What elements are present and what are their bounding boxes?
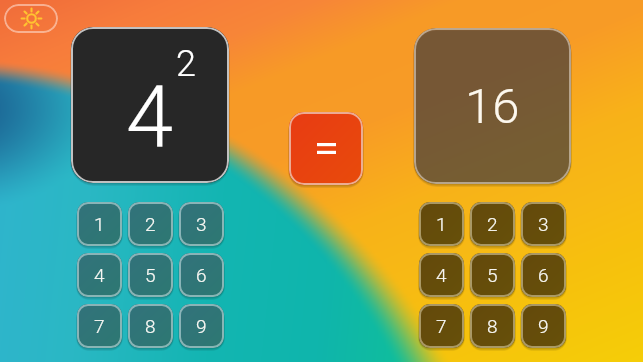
button[interactable]: 7 — [419, 304, 464, 348]
staticText: 16 — [465, 78, 520, 135]
button[interactable]: 16 — [414, 28, 571, 184]
staticText: 1 — [94, 213, 105, 235]
button[interactable]: 3 — [179, 202, 224, 246]
staticText: 9 — [538, 315, 549, 337]
button[interactable]: 9 — [179, 304, 224, 348]
button[interactable]: 4 — [419, 253, 464, 297]
staticText: 6 — [538, 264, 549, 286]
staticText: 2 — [487, 213, 498, 235]
staticText: 3 — [538, 213, 549, 235]
staticText: 9 — [196, 315, 207, 337]
button[interactable]: 7 — [77, 304, 122, 348]
staticText: 5 — [145, 264, 156, 286]
staticText: 3 — [196, 213, 207, 235]
staticText: 2 — [176, 43, 196, 85]
staticText: 5 — [487, 264, 498, 286]
staticText: 2 — [145, 213, 156, 235]
button[interactable]: Brightness — [4, 4, 58, 33]
staticText: 4 — [436, 264, 447, 286]
button[interactable]: 1 — [419, 202, 464, 246]
button[interactable]: 4 — [77, 253, 122, 297]
staticText: 6 — [196, 264, 207, 286]
button[interactable]: 1 — [77, 202, 122, 246]
button[interactable]: 5 — [470, 253, 515, 297]
staticText: 7 — [436, 315, 447, 337]
staticText: 4 — [94, 264, 105, 286]
button[interactable]: 3 — [521, 202, 566, 246]
button[interactable]: 6 — [179, 253, 224, 297]
button[interactable]: 8 — [128, 304, 173, 348]
button[interactable]: 2 — [128, 202, 173, 246]
staticText: 4 — [126, 67, 174, 167]
staticText: 8 — [145, 315, 156, 337]
button[interactable]: Equals — [289, 112, 363, 185]
button[interactable]: 6 — [521, 253, 566, 297]
button[interactable]: 8 — [470, 304, 515, 348]
button[interactable]: 2 — [470, 202, 515, 246]
staticText: 8 — [487, 315, 498, 337]
button[interactable]: 9 — [521, 304, 566, 348]
staticText: 1 — [436, 213, 447, 235]
button[interactable]: 5 — [128, 253, 173, 297]
button[interactable]: 4 — [71, 27, 229, 183]
staticText: 7 — [94, 315, 105, 337]
